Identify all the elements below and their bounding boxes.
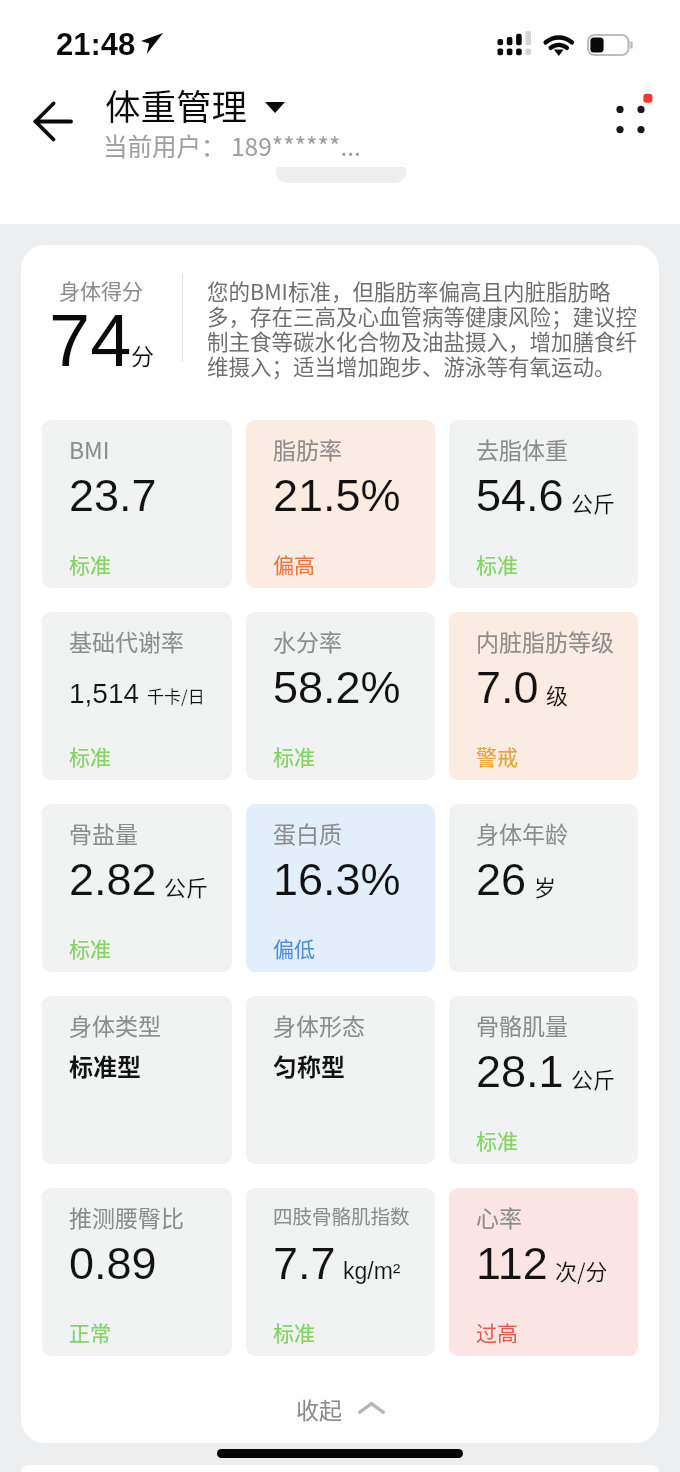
staticText: 54.6 (476, 470, 564, 520)
staticText: 千卡/日 (147, 683, 205, 708)
staticText: 公斤 (571, 1062, 616, 1094)
staticText: 警戒 (476, 741, 518, 771)
button[interactable]: 去脂体重 (449, 420, 638, 588)
staticText: 偏低 (273, 933, 315, 963)
button[interactable]: 推测腰臀比 (42, 1188, 232, 1356)
staticText: 内脏脂肪等级 (476, 624, 614, 657)
staticText: 体重管理 (105, 79, 248, 130)
staticText: 身体得分 (59, 275, 143, 305)
staticText: 身体类型 (69, 1008, 161, 1041)
staticText: 脂肪率 (273, 432, 342, 465)
button[interactable]: 收起 (21, 1373, 659, 1443)
staticText: 标准 (69, 741, 111, 771)
button[interactable]: 心率 (449, 1188, 638, 1356)
staticText: 28.1 (476, 1046, 564, 1096)
staticText: 基础代谢率 (69, 624, 184, 657)
staticText: 23.7 (69, 470, 157, 520)
staticText: 112 (476, 1238, 548, 1288)
staticText: 26 (476, 854, 527, 904)
staticText: 7.0 (476, 662, 539, 712)
staticText: 1,514 (69, 678, 140, 709)
button[interactable]: 骨骼肌量 (449, 996, 638, 1164)
button[interactable]: More options (598, 88, 660, 150)
staticText: 标准 (69, 549, 111, 579)
staticText: 2.82 (69, 854, 157, 904)
staticText: BMI (69, 432, 110, 465)
staticText: 标准 (273, 1317, 315, 1347)
button[interactable]: 身体年龄 (449, 804, 638, 972)
button[interactable]: 基础代谢率 (42, 612, 232, 780)
button[interactable]: 骨盐量 (42, 804, 232, 972)
staticText: kg/m² (343, 1258, 401, 1284)
staticText: 岁 (534, 870, 557, 902)
staticText: 级 (546, 678, 569, 710)
staticText: 匀称型 (273, 1048, 345, 1083)
staticText: 身体年龄 (476, 816, 568, 849)
button[interactable]: 内脏脂肪等级 (449, 612, 638, 780)
staticText: 骨骼肌量 (476, 1008, 568, 1041)
staticText: 16.3% (273, 854, 401, 904)
staticText: 公斤 (571, 486, 616, 518)
staticText: 水分率 (273, 624, 342, 657)
staticText: 四肢骨骼肌指数 (273, 1201, 410, 1229)
staticText: 心率 (476, 1200, 522, 1233)
staticText: 蛋白质 (273, 816, 342, 849)
staticText: 标准 (69, 933, 111, 963)
staticText: 正常 (69, 1317, 111, 1347)
button[interactable]: 脂肪率 (246, 420, 435, 588)
staticText: 标准 (273, 741, 315, 771)
staticText: 次/分 (555, 1254, 608, 1286)
staticText: 74 (49, 299, 132, 382)
staticText: 分 (131, 338, 154, 371)
button[interactable]: Back (21, 90, 85, 154)
staticText: 0.89 (69, 1238, 157, 1288)
staticText: 公斤 (164, 870, 209, 902)
button[interactable]: 身体形态 (246, 996, 435, 1164)
staticText: 标准 (476, 549, 518, 579)
staticText: 58.2% (273, 662, 401, 712)
staticText: 标准型 (69, 1048, 141, 1083)
button[interactable]: BMI (42, 420, 232, 588)
staticText: 21:48 (56, 27, 136, 62)
button[interactable]: 水分率 (246, 612, 435, 780)
button[interactable]: 蛋白质 (246, 804, 435, 972)
staticText: 推测腰臀比 (69, 1200, 184, 1233)
staticText: 收起 (296, 1392, 342, 1425)
staticText: 骨盐量 (69, 816, 138, 849)
staticText: 身体形态 (273, 1008, 365, 1041)
staticText: 7.7 (273, 1238, 336, 1288)
button[interactable]: 四肢骨骼肌指数 (246, 1188, 435, 1356)
staticText: 去脂体重 (476, 432, 568, 465)
staticText: 21.5% (273, 470, 401, 520)
staticText: 偏高 (273, 549, 315, 579)
staticText: 您的BMI标准，但脂肪率偏高且内脏脂肪略多，存在三高及心血管病等健康风险；建议控… (207, 280, 641, 380)
staticText: 当前用户： 189******... (103, 128, 361, 163)
staticText: 过高 (476, 1317, 518, 1347)
staticText: 标准 (476, 1125, 518, 1155)
button[interactable]: 身体类型 (42, 996, 232, 1164)
button[interactable]: 体重管理 (105, 79, 285, 130)
